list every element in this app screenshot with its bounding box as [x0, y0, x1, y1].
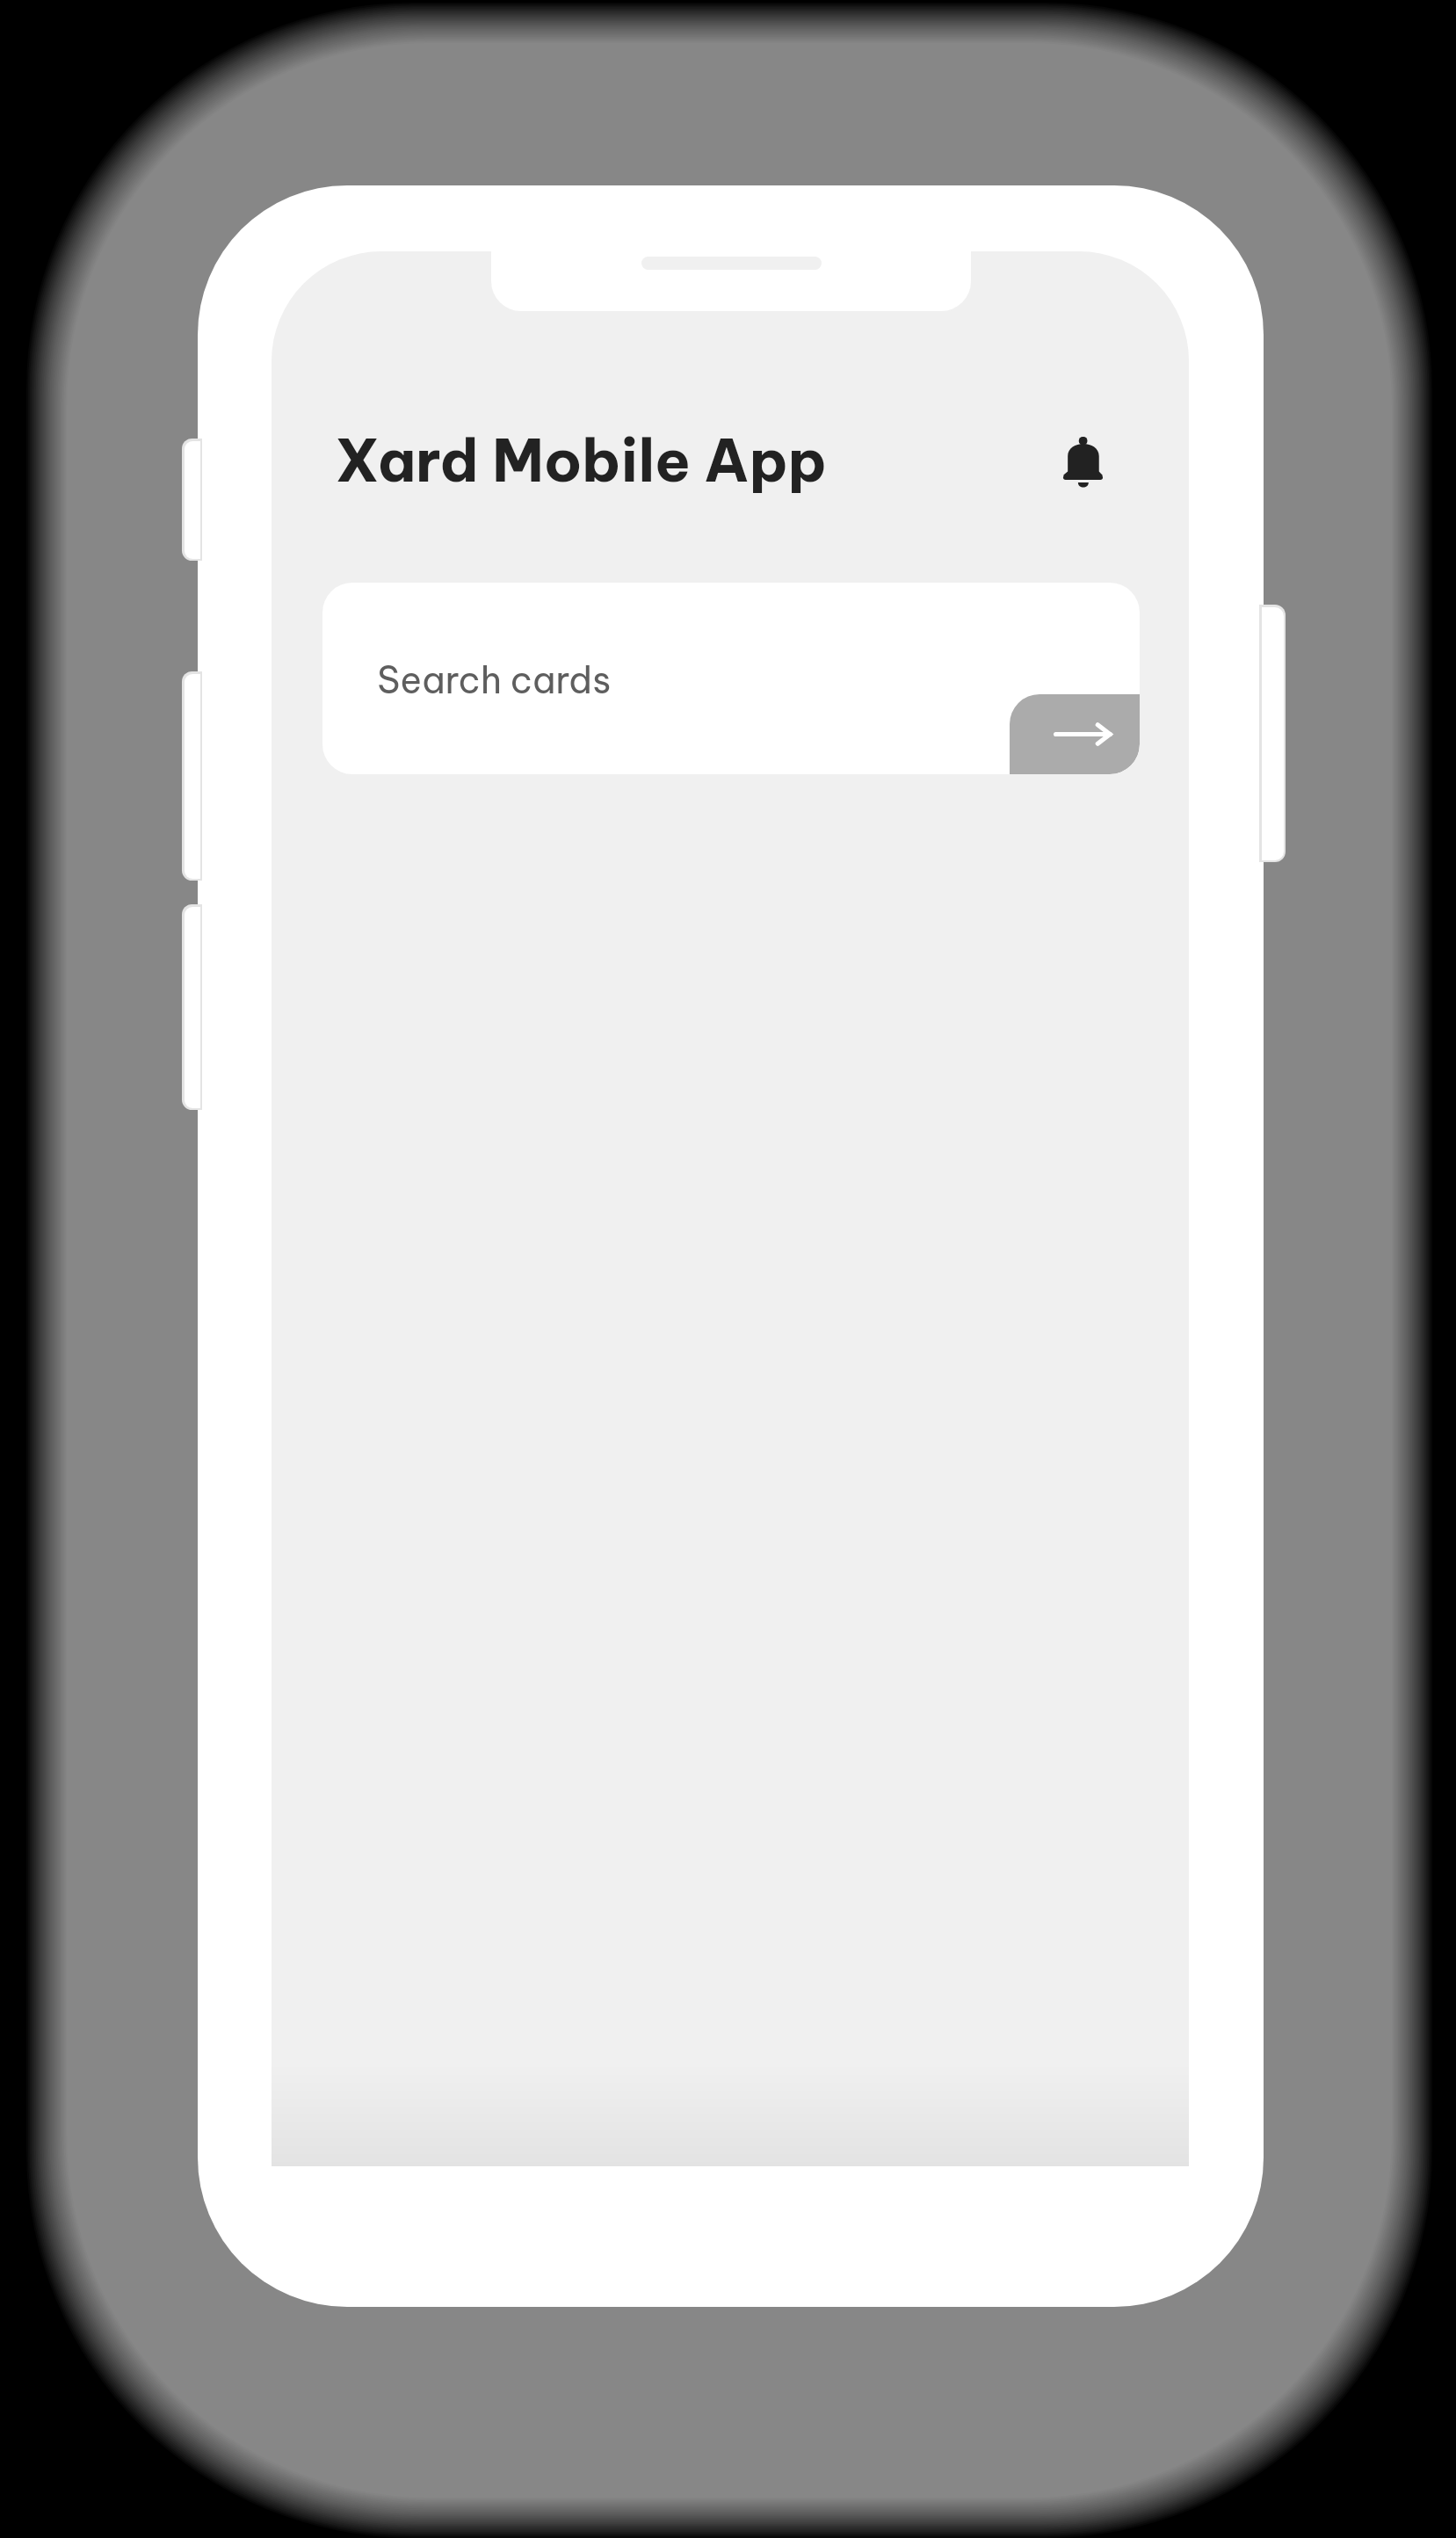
button[interactable]: Search cards	[322, 583, 1140, 774]
button[interactable]: Notifications	[1044, 424, 1121, 501]
button[interactable]: Search	[1010, 694, 1140, 774]
button[interactable]: Xard Mobile App	[335, 411, 827, 508]
staticText: Search cards	[377, 656, 612, 702]
staticText: Xard Mobile App	[335, 423, 827, 497]
